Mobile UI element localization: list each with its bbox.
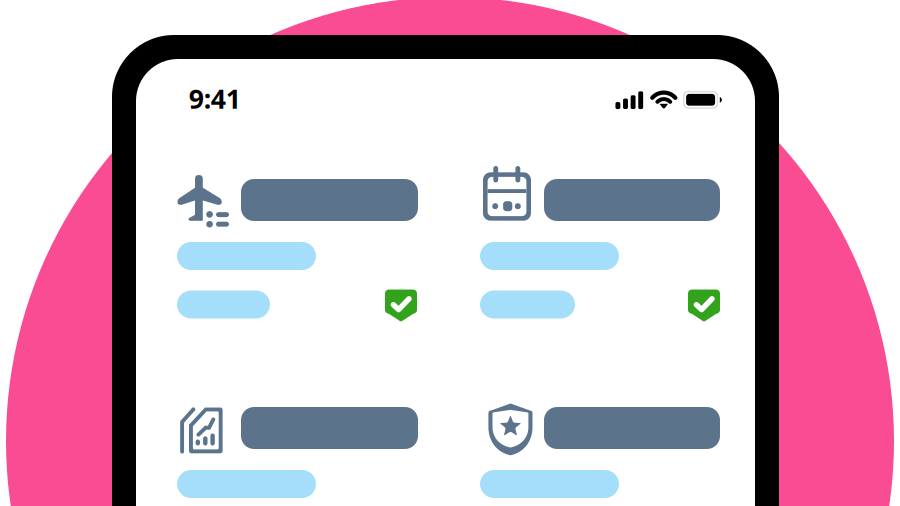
staticText: 9:41	[189, 81, 241, 116]
button[interactable]	[480, 403, 724, 506]
button[interactable]	[177, 403, 421, 506]
button[interactable]	[177, 175, 421, 323]
button[interactable]	[480, 175, 724, 323]
